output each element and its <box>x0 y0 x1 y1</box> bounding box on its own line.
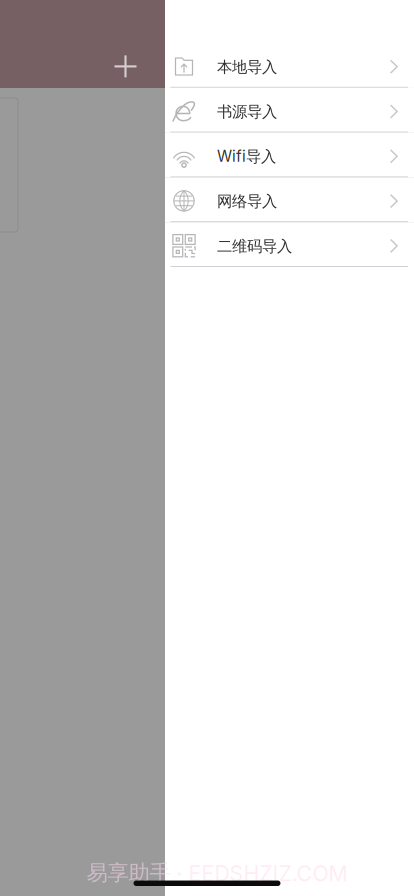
button[interactable]: 本地导入 <box>165 43 414 88</box>
staticText: Wifi导入 <box>217 147 276 166</box>
button[interactable]: Wifi导入 <box>165 133 414 177</box>
staticText: 易享助手 · EEDSHZIZ.COM <box>86 860 347 886</box>
button[interactable]: 二维码导入 <box>165 222 414 267</box>
staticText: 本地导入 <box>217 57 277 77</box>
staticText: 二维码导入 <box>217 237 292 256</box>
button[interactable]: 网络导入 <box>165 177 414 222</box>
button[interactable]: 书源导入 <box>165 88 414 133</box>
button[interactable]: Add <box>103 44 147 88</box>
staticText: 网络导入 <box>217 192 277 211</box>
staticText: 书源导入 <box>217 102 277 121</box>
